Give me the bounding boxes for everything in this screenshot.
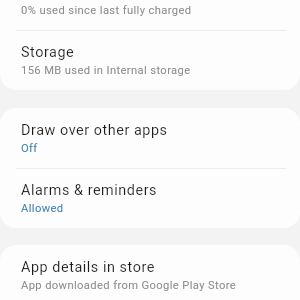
button[interactable]: Storage [0,30,300,90]
staticText: App details in store [21,259,155,276]
button[interactable]: Draw over other apps [0,108,300,168]
staticText: Draw over other apps [21,122,168,139]
button[interactable]: Alarms & reminders [0,168,300,228]
staticText: App downloaded from Google Play Store [21,279,237,292]
button[interactable]: Battery [0,0,300,30]
staticText: 156 MB used in Internal storage [21,64,191,77]
staticText: Alarms & reminders [21,182,158,199]
staticText: Off [21,142,38,155]
staticText: Storage [21,44,75,61]
button[interactable]: App details in store [0,245,300,300]
staticText: 0% used since last fully charged [21,4,192,17]
staticText: Allowed [21,202,64,215]
